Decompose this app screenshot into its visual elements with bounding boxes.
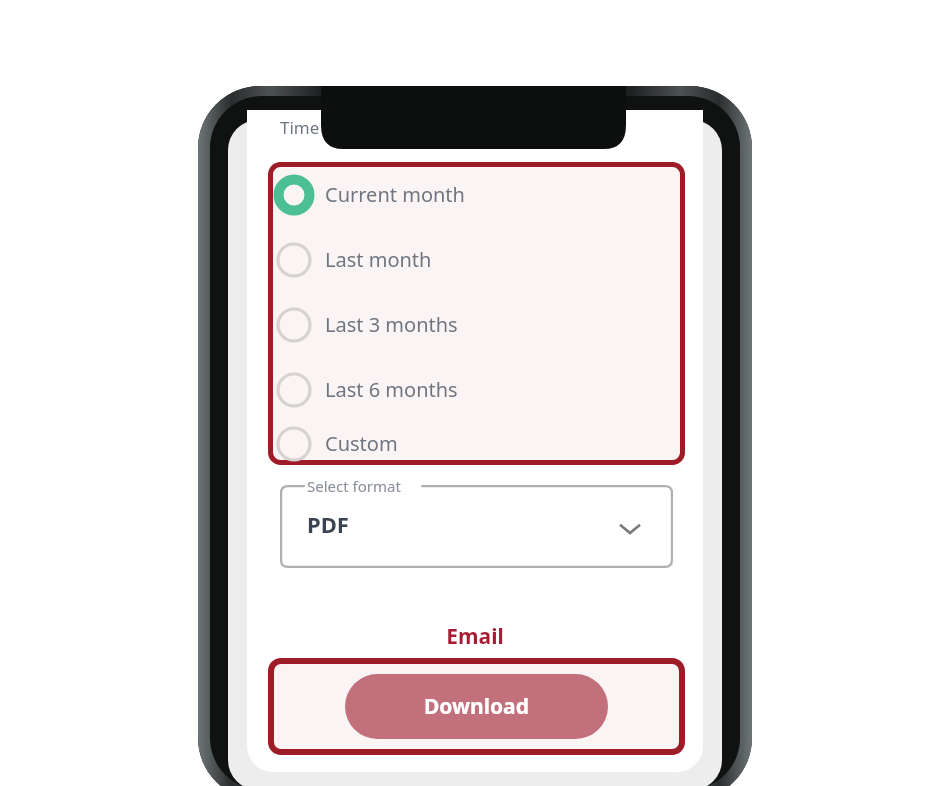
- staticText: Custom: [325, 430, 398, 457]
- button[interactable]: Current month: [268, 162, 685, 227]
- staticText: Last 6 months: [325, 376, 458, 403]
- button[interactable]: Last month: [268, 227, 685, 292]
- button[interactable]: Custom: [268, 422, 685, 465]
- button[interactable]: Download: [345, 674, 608, 739]
- staticText: PDF: [307, 509, 349, 539]
- button[interactable]: Select format: [280, 485, 673, 568]
- staticText: Current month: [325, 181, 465, 208]
- button[interactable]: Last 6 months: [268, 357, 685, 422]
- staticText: Time period: [280, 116, 376, 139]
- staticText: Download: [424, 692, 529, 721]
- staticText: Last 3 months: [325, 311, 458, 338]
- other: Expand format options: [619, 518, 641, 540]
- button[interactable]: Email: [397, 618, 553, 654]
- staticText: Email: [446, 622, 504, 651]
- button[interactable]: Current month: [268, 162, 685, 465]
- staticText: Select format: [307, 476, 401, 496]
- staticText: Last month: [325, 246, 432, 273]
- button[interactable]: Last 3 months: [268, 292, 685, 357]
